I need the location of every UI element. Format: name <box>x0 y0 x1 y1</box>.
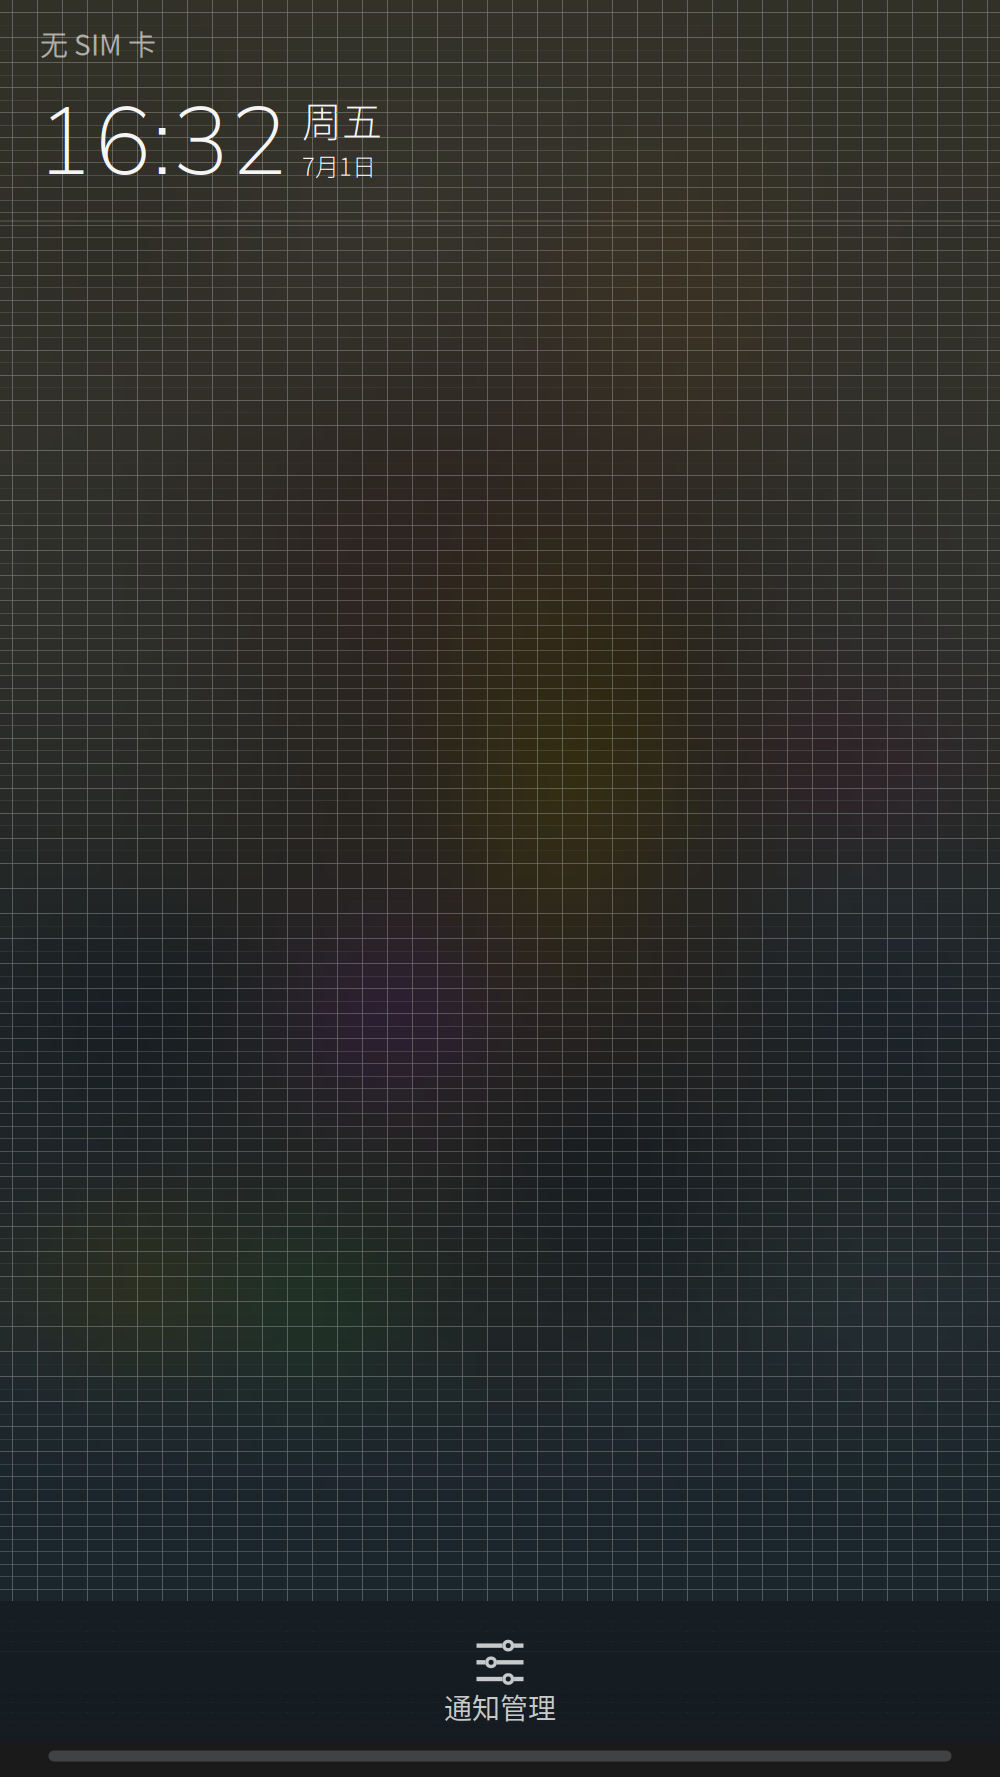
staticText: 周五 <box>302 90 382 148</box>
staticText: 无 SIM 卡 <box>40 23 156 63</box>
staticText: 16:32 <box>36 77 288 208</box>
staticText: 通知管理 <box>444 1687 556 1727</box>
button[interactable]: 通知管理 <box>0 1601 1000 1743</box>
staticText: 7月1日 <box>302 148 376 183</box>
